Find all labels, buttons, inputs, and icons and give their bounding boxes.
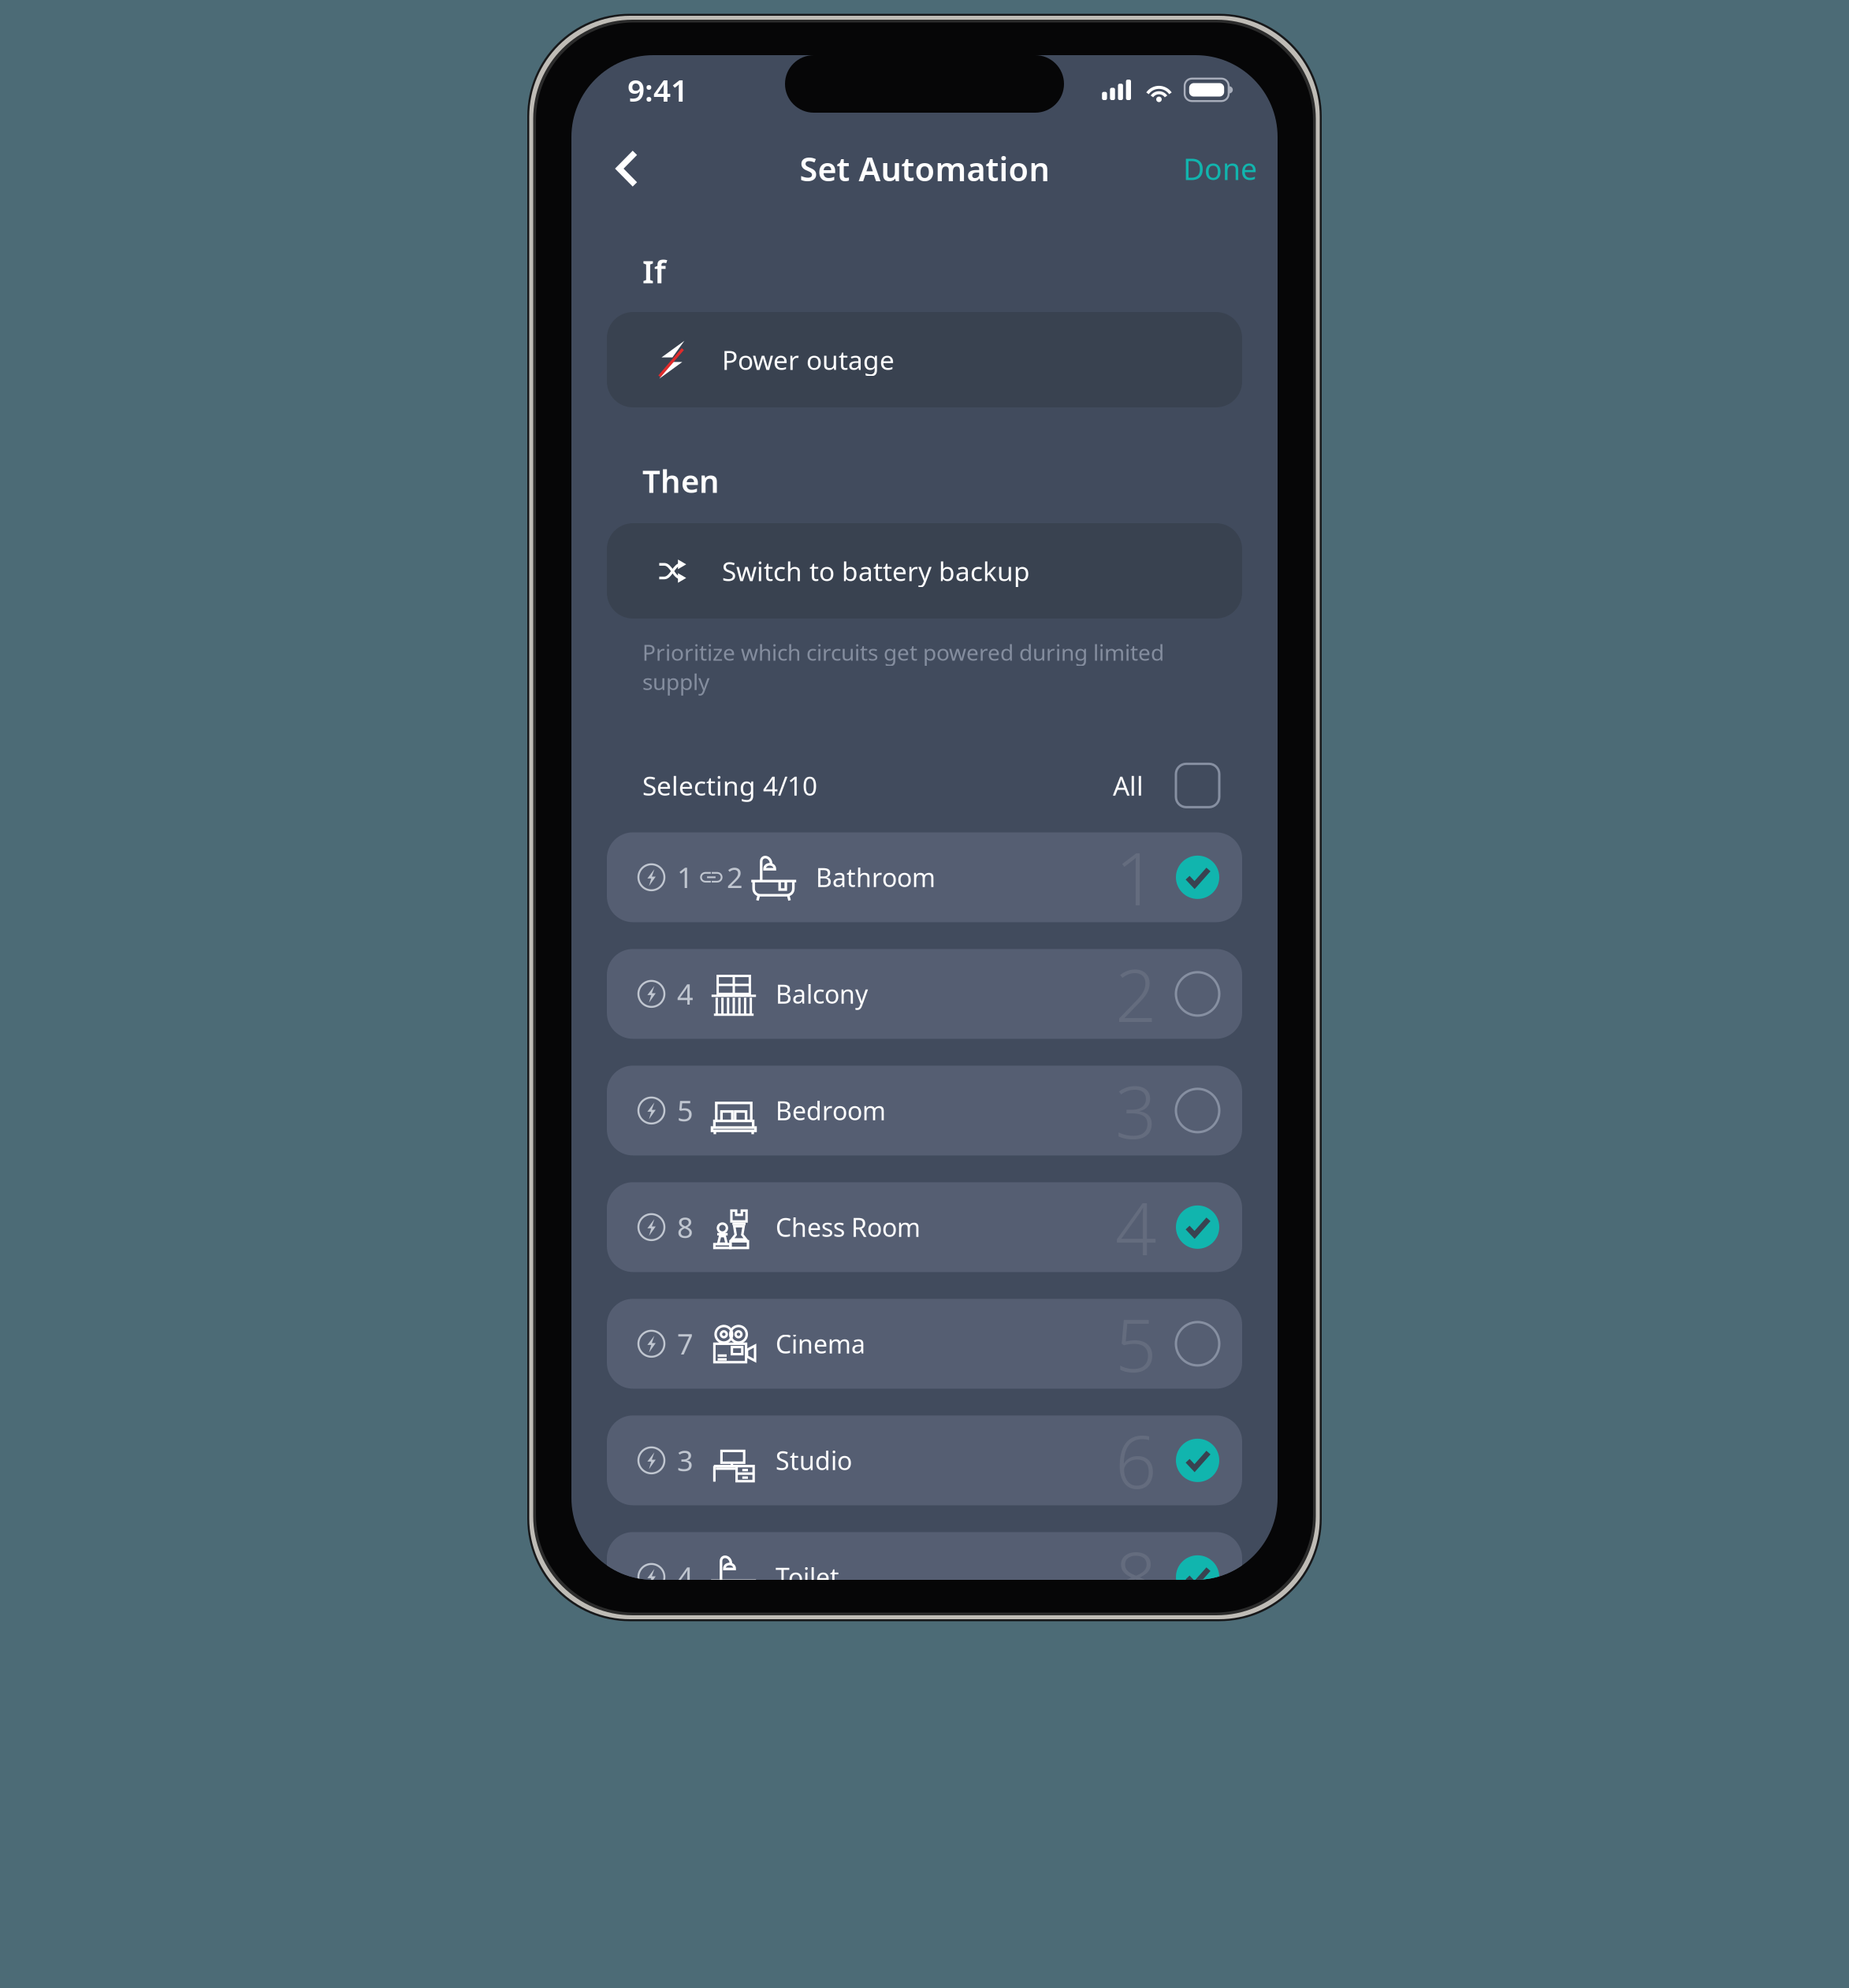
button[interactable]: Power outage	[607, 312, 1242, 407]
button[interactable]: Done	[1183, 140, 1257, 197]
staticText: 1	[677, 858, 694, 896]
staticText: Prioritize which circuits get powered du…	[642, 637, 1164, 696]
staticText: Power outage	[722, 342, 895, 377]
staticText: 3	[677, 1442, 694, 1479]
staticText: 9:41	[627, 70, 688, 110]
button[interactable]: All	[1113, 764, 1219, 807]
staticText: If	[642, 250, 666, 292]
button[interactable]: 4	[607, 1532, 1242, 1622]
staticText: 2	[1115, 946, 1157, 1042]
staticText: Cinema	[776, 1327, 865, 1360]
staticText: 2	[727, 858, 743, 896]
button[interactable]: 7	[607, 1299, 1242, 1389]
staticText: All	[1113, 768, 1144, 803]
staticText: Chess Room	[776, 1210, 921, 1244]
button[interactable]: 5	[607, 1066, 1242, 1155]
staticText: 4	[677, 975, 694, 1013]
staticText: Bedroom	[776, 1094, 886, 1127]
button[interactable]: 8	[607, 1182, 1242, 1272]
button[interactable]: 3	[607, 1415, 1242, 1505]
staticText: 4	[677, 1558, 694, 1596]
staticText: Selecting 4/10	[642, 768, 817, 803]
staticText: 8	[1115, 1529, 1157, 1625]
staticText: Bathroom	[816, 861, 936, 894]
staticText: Set Automation	[800, 147, 1049, 190]
staticText: 7	[677, 1325, 694, 1363]
staticText: Toilet	[776, 1560, 839, 1594]
staticText: 6	[1115, 1412, 1157, 1509]
staticText: Studio	[776, 1444, 852, 1477]
staticText: 4	[1115, 1179, 1157, 1275]
staticText: 3	[1115, 1062, 1157, 1159]
staticText: Then	[642, 460, 720, 502]
staticText: Balcony	[776, 977, 868, 1011]
staticText: 5	[1115, 1296, 1157, 1392]
button[interactable]: Switch to battery backup	[607, 523, 1242, 619]
staticText: Done	[1183, 149, 1257, 188]
staticText: 5	[677, 1092, 694, 1129]
button[interactable]: Back	[598, 140, 655, 197]
staticText: Switch to battery backup	[722, 553, 1030, 588]
button[interactable]: 4	[607, 949, 1242, 1039]
button[interactable]: 1	[607, 832, 1242, 922]
staticText: 8	[677, 1208, 694, 1246]
staticText: 1	[1115, 829, 1157, 925]
